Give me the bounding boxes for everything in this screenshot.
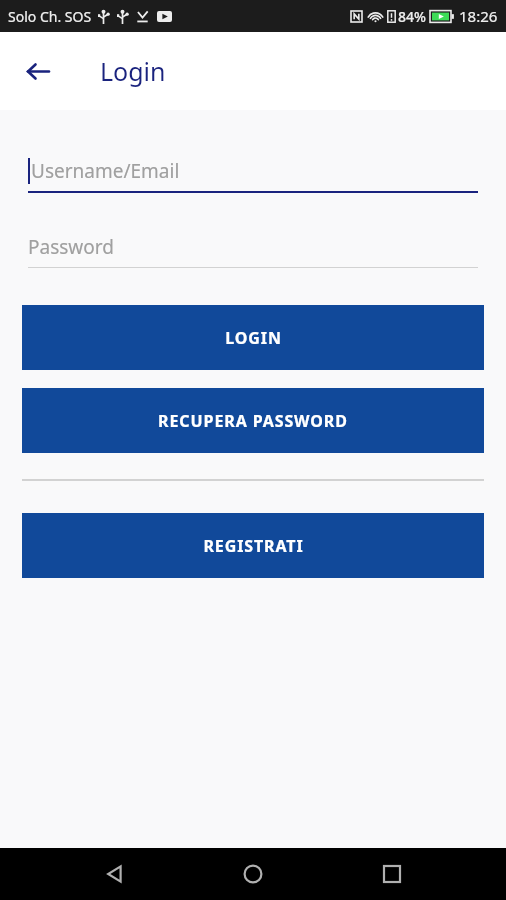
staticText: 84% xyxy=(398,7,426,26)
button[interactable]: Back xyxy=(91,850,139,898)
button[interactable]: Recent apps xyxy=(368,850,416,898)
staticText: Password xyxy=(28,234,114,260)
staticText: Solo Ch. SOS xyxy=(8,7,92,26)
staticText: RECUPERA PASSWORD xyxy=(158,410,348,432)
staticText: REGISTRATI xyxy=(203,535,304,557)
staticText: LOGIN xyxy=(225,327,282,349)
button[interactable]: Back xyxy=(14,47,62,95)
button[interactable]: Home xyxy=(229,850,277,898)
button[interactable]: Username/Email xyxy=(28,158,478,193)
button[interactable]: Password xyxy=(28,234,478,268)
staticText: Username/Email xyxy=(31,158,180,184)
button[interactable]: REGISTRATI xyxy=(22,513,484,578)
button[interactable]: LOGIN xyxy=(22,305,484,370)
staticText: 18:26 xyxy=(459,6,498,26)
button[interactable]: RECUPERA PASSWORD xyxy=(22,388,484,453)
staticText: Login xyxy=(100,54,166,88)
